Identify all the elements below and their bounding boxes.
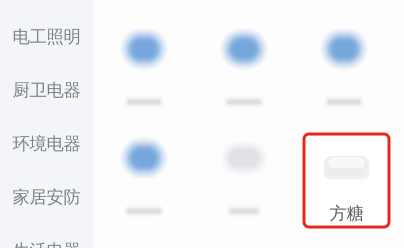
button[interactable] [94,134,194,243]
button[interactable]: 方糖 [294,134,394,243]
staticText: 方糖 [329,203,363,224]
button[interactable]: 厨卫电器 [0,63,93,117]
button[interactable]: 生活电器 [0,224,93,248]
button[interactable] [194,134,294,243]
staticText: 家居安防 [12,187,80,208]
button[interactable]: 环境电器 [0,117,93,170]
staticText: 电工照明 [12,26,80,47]
staticText: 厨卫电器 [12,80,80,101]
button[interactable] [294,25,394,134]
button[interactable] [194,25,294,134]
staticText: 环境电器 [12,133,80,154]
button[interactable] [94,25,194,134]
button[interactable]: 电工照明 [0,10,93,63]
button[interactable]: 家居安防 [0,170,93,224]
staticText: 生活电器 [12,240,80,248]
